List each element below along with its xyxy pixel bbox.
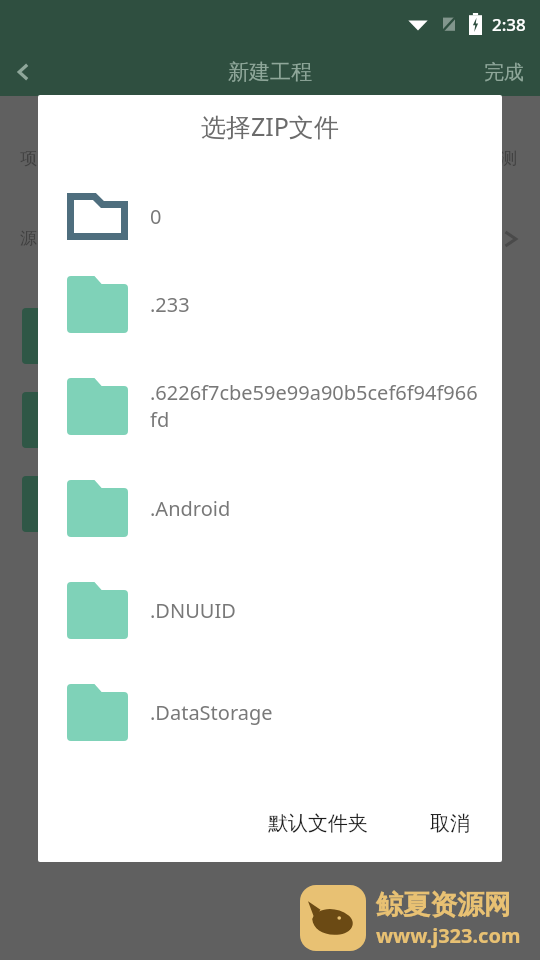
staticText: .6226f7cbe59e99a90b5cef6f94f966fd bbox=[150, 379, 484, 433]
button[interactable]: .Android bbox=[38, 457, 502, 559]
staticText: 新建工程 bbox=[228, 59, 312, 85]
button[interactable]: 0 bbox=[38, 179, 502, 253]
staticText: .233 bbox=[150, 291, 484, 318]
staticText: 源 bbox=[20, 228, 37, 249]
staticText: www.j323.com bbox=[376, 922, 521, 949]
staticText: 项 bbox=[20, 148, 37, 169]
staticText: 2:38 bbox=[492, 13, 526, 36]
staticText: 鲸夏资源网 bbox=[376, 888, 511, 922]
button[interactable]: 取消 bbox=[420, 803, 480, 844]
button[interactable]: 默认文件夹 bbox=[258, 803, 378, 844]
staticText: 完成 bbox=[484, 60, 524, 85]
button[interactable]: .6226f7cbe59e99a90b5cef6f94f966fd bbox=[38, 355, 502, 457]
staticText: 取消 bbox=[430, 811, 470, 836]
staticText: 选择ZIP文件 bbox=[38, 109, 502, 143]
staticText: .DNUUID bbox=[150, 597, 484, 624]
button[interactable]: .DataStorage bbox=[38, 661, 502, 763]
button[interactable]: .233 bbox=[38, 253, 502, 355]
staticText: 默认文件夹 bbox=[268, 811, 368, 836]
staticText: 0 bbox=[150, 203, 484, 230]
button[interactable]: Back bbox=[0, 48, 48, 96]
staticText: .DataStorage bbox=[150, 699, 484, 726]
button[interactable]: .DNUUID bbox=[38, 559, 502, 661]
staticText: .Android bbox=[150, 495, 484, 522]
button[interactable]: 完成 bbox=[484, 60, 524, 85]
staticText: 测 bbox=[500, 148, 517, 169]
